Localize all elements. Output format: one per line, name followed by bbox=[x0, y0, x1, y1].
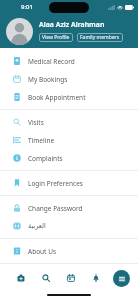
button[interactable]: Change Password bbox=[0, 199, 138, 217]
button[interactable]: Medical Record bbox=[0, 52, 138, 70]
button[interactable]: My Bookings bbox=[0, 70, 138, 88]
button[interactable]: Menu bbox=[113, 270, 130, 287]
staticText: Login Preferences bbox=[28, 179, 83, 188]
button[interactable]: Appointments bbox=[63, 270, 79, 286]
staticText: Book Appointment bbox=[28, 93, 86, 102]
button[interactable]: Login Preferences bbox=[0, 174, 138, 192]
button[interactable]: Profile photo bbox=[6, 18, 33, 45]
button[interactable]: Book Appointment bbox=[0, 88, 138, 106]
staticText: 9:01 bbox=[21, 3, 33, 11]
staticText: View Profile bbox=[42, 34, 70, 41]
button[interactable]: View Profile bbox=[39, 33, 73, 42]
button[interactable]: Visits bbox=[0, 113, 138, 131]
button[interactable]: About Us bbox=[0, 242, 138, 260]
staticText: Alaa Aziz Alrahman bbox=[39, 20, 105, 30]
staticText: Complaints bbox=[28, 154, 63, 163]
staticText: About Us bbox=[28, 247, 57, 256]
button[interactable]: Complaints bbox=[0, 149, 138, 167]
staticText: Visits bbox=[28, 118, 44, 127]
staticText: العربية bbox=[28, 222, 46, 230]
button[interactable]: Search bbox=[38, 270, 54, 286]
button[interactable]: العربية bbox=[0, 217, 138, 235]
button[interactable]: Timeline bbox=[0, 131, 138, 149]
staticText: My Bookings bbox=[28, 75, 68, 84]
button[interactable]: Notifications bbox=[88, 270, 104, 286]
staticText: Medical Record bbox=[28, 57, 75, 66]
staticText: Timeline bbox=[28, 136, 55, 145]
button[interactable]: Medical records bbox=[13, 270, 29, 286]
button[interactable]: Family members bbox=[77, 33, 123, 42]
staticText: Family members bbox=[80, 34, 120, 41]
staticText: Change Password bbox=[28, 204, 83, 213]
